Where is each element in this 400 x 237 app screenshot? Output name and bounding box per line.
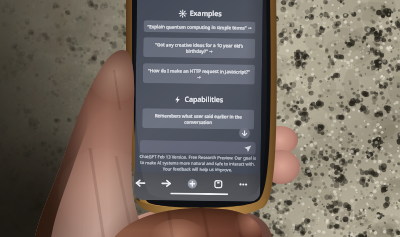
- staticText: ChatGPT Feb 13 Version. Free Research Pr…: [138, 154, 257, 174]
- button[interactable]: “Got any creative ideas for a 10 year ol…: [143, 37, 255, 59]
- button[interactable]: More: [236, 177, 250, 192]
- button[interactable]: New tab: [185, 177, 199, 191]
- staticText: Remembers what user said earlier in the …: [145, 112, 251, 126]
- button[interactable]: Tabs: [211, 177, 225, 191]
- staticText: Examples: [190, 9, 222, 19]
- button[interactable]: “Explain quantum computing in simple ter…: [143, 20, 256, 34]
- staticText: “How do I make an HTTP request in Javasc…: [146, 67, 252, 81]
- button[interactable]: Scroll to bottom: [239, 127, 250, 139]
- button[interactable]: [140, 140, 256, 155]
- button[interactable]: Back: [134, 176, 147, 190]
- staticText: “Explain quantum computing in simple ter…: [147, 23, 252, 31]
- button[interactable]: “How do I make an HTTP request in Javasc…: [143, 63, 255, 85]
- button[interactable]: Remembers what user said earlier in the …: [142, 108, 254, 130]
- button[interactable]: Forward: [159, 176, 173, 190]
- staticText: “Got any creative ideas for a 10 year ol…: [146, 41, 252, 55]
- staticText: Capabilities: [184, 95, 223, 105]
